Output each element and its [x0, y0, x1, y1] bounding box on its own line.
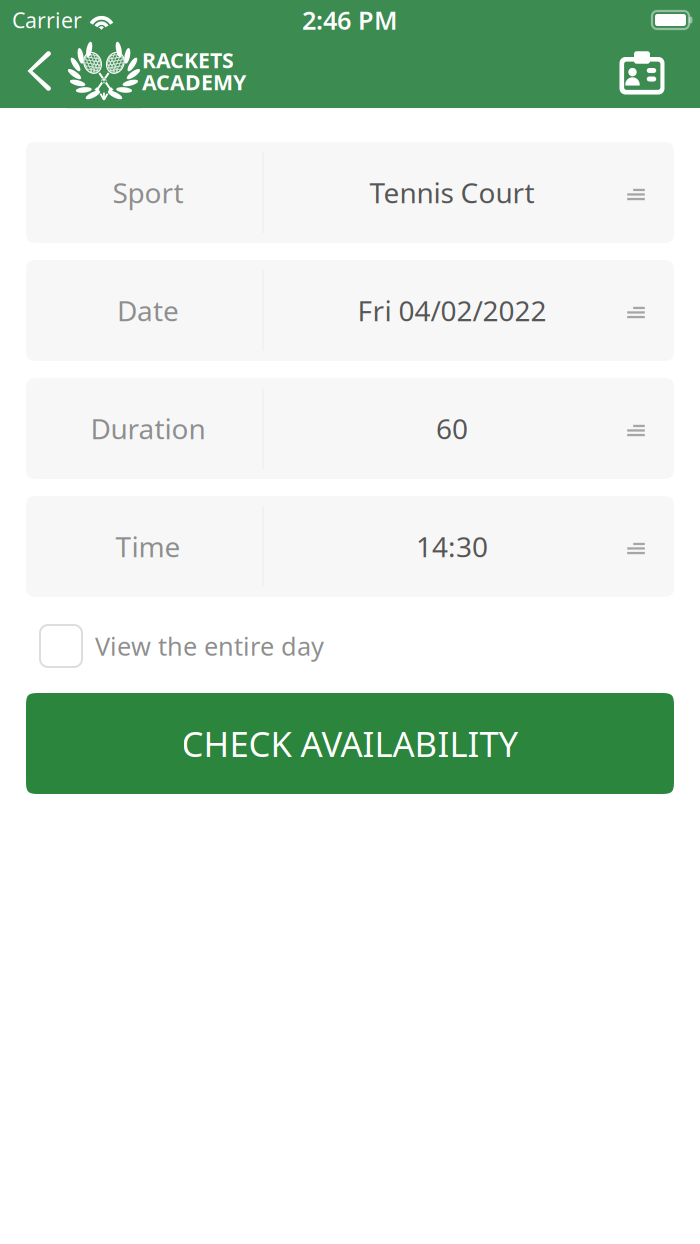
staticText: 14:30 — [416, 528, 488, 565]
button[interactable]: Date — [26, 260, 674, 361]
staticText: Fri 04/02/2022 — [357, 292, 546, 329]
staticText: CHECK AVAILABILITY — [181, 720, 518, 766]
button[interactable]: Sport — [26, 142, 674, 243]
staticText: ACADEMY — [142, 68, 246, 96]
staticText: 2:46 PM — [302, 3, 398, 37]
button[interactable]: Member card — [606, 40, 678, 108]
button[interactable]: Duration — [26, 378, 674, 479]
button[interactable]: CHECK AVAILABILITY — [26, 693, 674, 794]
staticText: Tennis Court — [369, 174, 534, 211]
staticText: View the entire day — [95, 629, 324, 663]
staticText: Sport — [112, 174, 183, 211]
staticText: RACKETS — [142, 46, 234, 74]
button[interactable]: Time — [26, 496, 674, 597]
staticText: Carrier — [12, 6, 82, 34]
staticText: 60 — [436, 410, 468, 447]
button[interactable]: View the entire day — [26, 622, 674, 670]
button[interactable]: Back — [17, 40, 61, 108]
staticText: Time — [115, 528, 180, 565]
staticText: Date — [117, 292, 179, 329]
staticText: Duration — [90, 410, 205, 447]
